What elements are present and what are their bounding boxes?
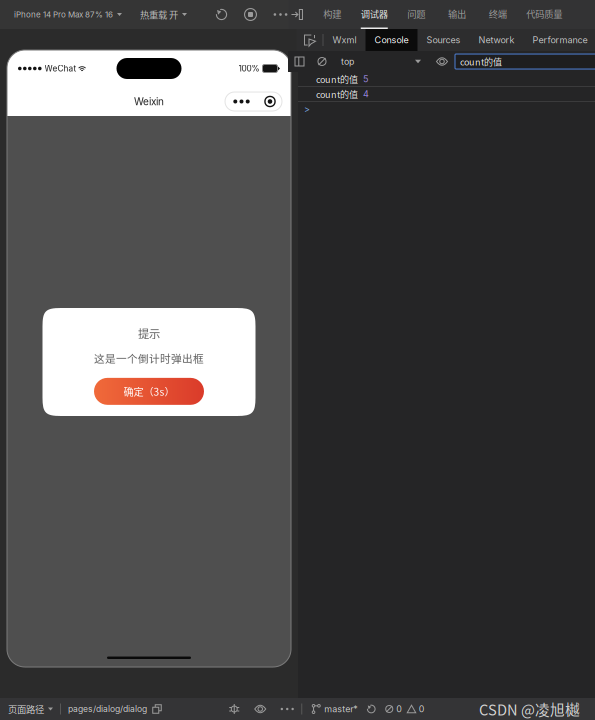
staticText: Network: [478, 34, 514, 45]
staticText: 页面路径: [8, 702, 44, 716]
staticText: count的值: [316, 72, 358, 85]
staticText: 热重载 开: [140, 8, 178, 21]
staticText: 这是一个倒计时弹出框: [94, 350, 204, 366]
staticText: Console: [374, 34, 408, 45]
button[interactable]: 热重载 开: [122, 0, 187, 29]
staticText: 确定（3s）: [123, 384, 174, 399]
staticText: CSDN @凌旭樾: [479, 698, 580, 720]
staticText: Weixin: [134, 95, 164, 108]
button[interactable]: Stop: [236, 0, 265, 29]
button[interactable]: master*: [312, 698, 357, 720]
button[interactable]: Select element: [296, 29, 322, 51]
staticText: 0: [396, 704, 402, 714]
button[interactable]: Copy path: [147, 698, 167, 720]
button[interactable]: top: [333, 51, 429, 72]
button[interactable]: More: [265, 0, 296, 29]
staticText: 调试器: [361, 7, 388, 20]
button[interactable]: 确定（3s）: [94, 378, 204, 405]
button[interactable]: Show filters: [429, 51, 455, 72]
staticText: 0: [419, 704, 425, 714]
button[interactable]: 调试器: [353, 0, 396, 29]
staticText: pages/dialog/dialog: [68, 704, 147, 714]
staticText: 100%: [238, 63, 259, 73]
staticText: 终端: [489, 7, 507, 20]
staticText: Sources: [426, 34, 460, 45]
staticText: iPhone 14 Pro Max 87% 16: [14, 10, 113, 19]
button[interactable]: Toggle panel: [282, 0, 312, 29]
staticText: 提示: [138, 325, 160, 341]
button[interactable]: More: [273, 698, 301, 720]
button[interactable]: Sync: [357, 698, 385, 720]
button[interactable]: Toggle console sidebar: [288, 51, 311, 72]
staticText: 4: [363, 88, 369, 99]
button[interactable]: Menu: [225, 92, 282, 111]
button[interactable]: Sources: [417, 29, 469, 51]
staticText: count的值: [316, 87, 358, 100]
button[interactable]: 构建: [312, 0, 353, 29]
button[interactable]: iPhone 14 Pro Max 87% 16: [0, 0, 122, 29]
button[interactable]: Network: [469, 29, 523, 51]
staticText: Performance: [532, 34, 587, 45]
button[interactable]: Wxml: [323, 29, 365, 51]
button[interactable]: Console: [365, 29, 417, 51]
staticText: >: [304, 103, 310, 114]
button[interactable]: 代码质量: [518, 0, 570, 29]
button[interactable]: 输出: [437, 0, 477, 29]
button[interactable]: Debug: [221, 698, 247, 720]
staticText: WeChat: [45, 63, 77, 73]
button[interactable]: Performance: [523, 29, 595, 51]
button[interactable]: 页面路径: [0, 698, 53, 720]
button[interactable]: Refresh: [207, 0, 236, 29]
staticText: 5: [363, 73, 369, 84]
button[interactable]: 问题: [396, 0, 437, 29]
button[interactable]: 终端: [477, 0, 518, 29]
staticText: count的值: [460, 55, 502, 68]
staticText: 输出: [448, 7, 466, 20]
staticText: 构建: [323, 7, 341, 20]
button[interactable]: Clear console: [311, 51, 333, 72]
staticText: master*: [324, 704, 357, 714]
staticText: top: [341, 56, 354, 67]
staticText: 问题: [407, 7, 425, 20]
button[interactable]: Preview: [247, 698, 273, 720]
staticText: 代码质量: [526, 7, 562, 20]
staticText: Wxml: [332, 34, 356, 45]
